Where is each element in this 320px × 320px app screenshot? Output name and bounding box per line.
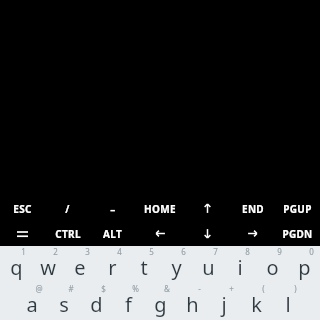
staticText: q [10,254,23,281]
staticText: END [242,202,264,216]
button[interactable]: 8 [224,246,256,283]
button[interactable]: % [112,283,144,320]
button[interactable]: 4 [96,246,128,283]
staticText: 6 [181,246,186,257]
staticText: / [65,202,70,216]
button[interactable]: ) [272,283,304,320]
staticText: k [251,291,262,318]
staticText: s [59,291,69,318]
staticText: w [40,254,56,281]
staticText: 9 [277,246,282,257]
staticText: 4 [117,246,122,257]
button[interactable]: HOME [135,196,185,221]
button[interactable]: & [144,283,176,320]
staticText: y [171,254,182,281]
button[interactable]: 0 [288,246,320,283]
staticText: + [229,283,234,294]
button[interactable]: Arrow up [185,196,230,221]
staticText: PGUP [283,202,312,216]
staticText: HOME [144,202,176,216]
staticText: i [237,254,243,281]
button[interactable]: 9 [256,246,288,283]
staticText: @ [35,283,43,294]
button[interactable]: PGDN [275,221,320,246]
staticText: ) [294,283,297,294]
button[interactable]: END [230,196,275,221]
button[interactable]: 3 [64,246,96,283]
button[interactable]: CTRL [45,221,90,246]
button[interactable]: – [90,196,135,221]
button[interactable]: - [176,283,208,320]
staticText: r [108,254,117,281]
button[interactable]: Arrow down [185,221,230,246]
staticText: ALT [103,227,122,241]
staticText: – [110,202,116,216]
staticText: CTRL [55,227,81,241]
button[interactable]: @ [16,283,48,320]
button[interactable]: 2 [32,246,64,283]
staticText: & [164,283,170,294]
staticText: 0 [309,246,314,257]
staticText: - [198,283,201,294]
staticText: 8 [245,246,250,257]
staticText: u [202,254,215,281]
staticText: g [154,291,167,318]
staticText: f [125,291,132,318]
staticText: 1 [21,246,26,257]
button[interactable]: # [48,283,80,320]
staticText: e [74,254,86,281]
button[interactable]: + [208,283,240,320]
staticText: a [26,291,38,318]
staticText: d [90,291,103,318]
button[interactable]: 7 [192,246,224,283]
button[interactable]: ESC [0,196,45,221]
staticText: PGDN [282,227,313,241]
staticText: j [221,291,227,318]
button[interactable]: / [45,196,90,221]
staticText: ESC [13,202,32,216]
button[interactable]: 6 [160,246,192,283]
button[interactable]: Arrow right [230,221,275,246]
staticText: ( [262,283,265,294]
staticText: 7 [213,246,218,257]
staticText: l [285,291,291,318]
button[interactable]: Arrow left [135,221,185,246]
staticText: $ [101,283,106,294]
staticText: p [298,254,311,281]
button[interactable]: $ [80,283,112,320]
button[interactable]: 1 [0,246,32,283]
staticText: o [266,254,279,281]
button[interactable]: ( [240,283,272,320]
button[interactable]: PGUP [275,196,320,221]
staticText: 3 [85,246,90,257]
button[interactable]: 5 [128,246,160,283]
staticText: 2 [53,246,58,257]
button[interactable]: ALT [90,221,135,246]
staticText: 5 [149,246,154,257]
staticText: % [132,283,139,294]
staticText: # [68,283,74,294]
staticText: h [186,291,199,318]
staticText: t [140,254,148,281]
button[interactable]: Tab [0,221,45,246]
